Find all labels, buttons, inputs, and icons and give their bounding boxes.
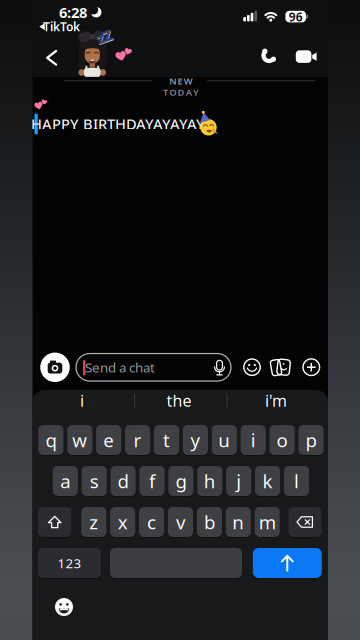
staticText: v (176, 510, 185, 534)
button[interactable]: Emoji keyboard (53, 596, 75, 618)
button[interactable]: q (38, 425, 63, 455)
button[interactable]: More attachments (301, 357, 321, 377)
button[interactable]: g (168, 466, 193, 496)
staticText: TikTok (43, 19, 80, 34)
staticText: k (263, 469, 273, 493)
staticText: j (236, 469, 241, 493)
staticText: h (204, 469, 216, 493)
staticText: zZ (96, 27, 112, 46)
button[interactable]: o (269, 425, 295, 455)
staticText: t (163, 428, 170, 452)
button[interactable]: f (139, 466, 165, 496)
staticText: c (147, 510, 156, 534)
button[interactable]: Voice call (258, 44, 280, 68)
button[interactable]: j (226, 466, 251, 496)
staticText: o (277, 428, 288, 452)
button[interactable]: v (168, 507, 193, 537)
button[interactable]: Stickers (242, 357, 262, 377)
staticText: z (89, 510, 98, 534)
staticText: s (90, 469, 99, 493)
button[interactable]: l (284, 466, 309, 496)
button[interactable]: Video call (294, 45, 318, 68)
button[interactable]: the (134, 390, 224, 410)
button[interactable]: m (255, 507, 280, 537)
staticText: p (305, 428, 316, 452)
button[interactable]: p (298, 425, 324, 455)
button[interactable]: Send (253, 548, 322, 578)
button[interactable]: i (241, 425, 266, 455)
button[interactable]: s (82, 466, 107, 496)
staticText: x (118, 510, 128, 534)
button[interactable]: r (125, 425, 150, 455)
staticText: d (118, 469, 129, 493)
staticText: NEW (169, 75, 193, 87)
staticText: HAPPY BIRTHDAYAYAYAY (31, 114, 205, 133)
button[interactable]: 123 (38, 548, 101, 578)
staticText: u (218, 428, 230, 452)
button[interactable]: y (183, 425, 208, 455)
staticText: b (204, 510, 215, 534)
staticText: 123 (57, 554, 81, 572)
button[interactable]: n (226, 507, 251, 537)
button[interactable]: w (67, 425, 92, 455)
staticText: n (232, 510, 244, 534)
button[interactable]: i'm (231, 390, 321, 410)
button[interactable]: a (53, 466, 78, 496)
button[interactable]: Back (43, 47, 60, 69)
button[interactable]: b (197, 507, 222, 537)
button[interactable]: Camera (40, 352, 70, 382)
staticText: i'm (265, 390, 287, 411)
button[interactable]: c (139, 507, 164, 537)
staticText: w (72, 428, 87, 452)
button[interactable]: Bitmoji stickers (269, 357, 291, 377)
button[interactable]: Shift (38, 507, 71, 537)
staticText: 6:28 (59, 3, 87, 22)
staticText: r (134, 428, 142, 452)
button[interactable]: t (154, 425, 179, 455)
staticText: Send a chat (85, 358, 155, 376)
button[interactable]: h (197, 466, 222, 496)
staticText: e (103, 428, 114, 452)
staticText: i (251, 428, 256, 452)
staticText: m (259, 510, 276, 534)
staticText: the (166, 390, 191, 411)
button[interactable]: e (96, 425, 121, 455)
button[interactable]: Delete (288, 507, 322, 537)
button[interactable]: Send a chat (76, 354, 231, 381)
staticText: y (190, 428, 200, 452)
button[interactable]: d (110, 466, 136, 496)
button[interactable]: u (212, 425, 237, 455)
staticText: 96 (289, 9, 303, 25)
button[interactable]: Back to TikTok (36, 19, 78, 34)
staticText: TODAY (163, 86, 199, 98)
staticText: a (60, 469, 70, 493)
staticText: f (149, 469, 155, 493)
staticText: i (80, 390, 84, 411)
button[interactable]: x (110, 507, 135, 537)
staticText: g (175, 469, 186, 493)
button[interactable]: z (81, 507, 106, 537)
button[interactable]: k (255, 466, 280, 496)
staticText: l (294, 469, 299, 493)
button[interactable]: i (37, 390, 127, 410)
button[interactable]: Profile (74, 31, 110, 77)
staticText: zZ (97, 27, 113, 47)
staticText: q (45, 428, 56, 452)
